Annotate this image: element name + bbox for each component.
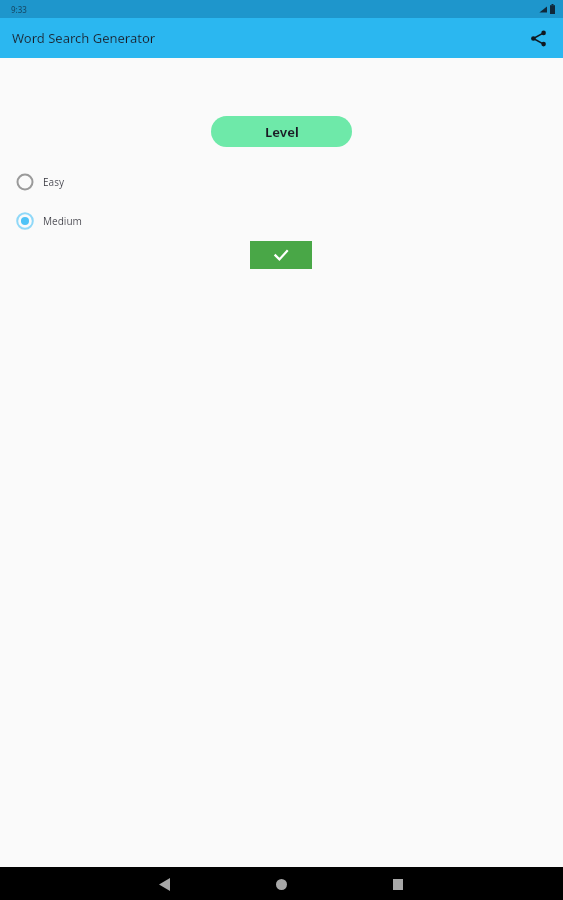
button[interactable]: Share bbox=[521, 21, 555, 55]
staticText: Word Search Generator bbox=[12, 29, 156, 47]
staticText: Level bbox=[265, 123, 299, 141]
button[interactable]: Easy bbox=[16, 165, 176, 199]
staticText: 9:33 bbox=[11, 4, 27, 15]
staticText: Easy bbox=[43, 175, 65, 189]
button[interactable]: Confirm bbox=[250, 241, 312, 269]
button[interactable]: Level bbox=[211, 116, 352, 147]
button[interactable]: Recent apps bbox=[384, 870, 412, 898]
button[interactable]: Home bbox=[267, 870, 295, 898]
staticText: Medium bbox=[43, 214, 82, 228]
button[interactable]: Medium bbox=[16, 204, 176, 238]
button[interactable]: Back bbox=[150, 870, 178, 898]
